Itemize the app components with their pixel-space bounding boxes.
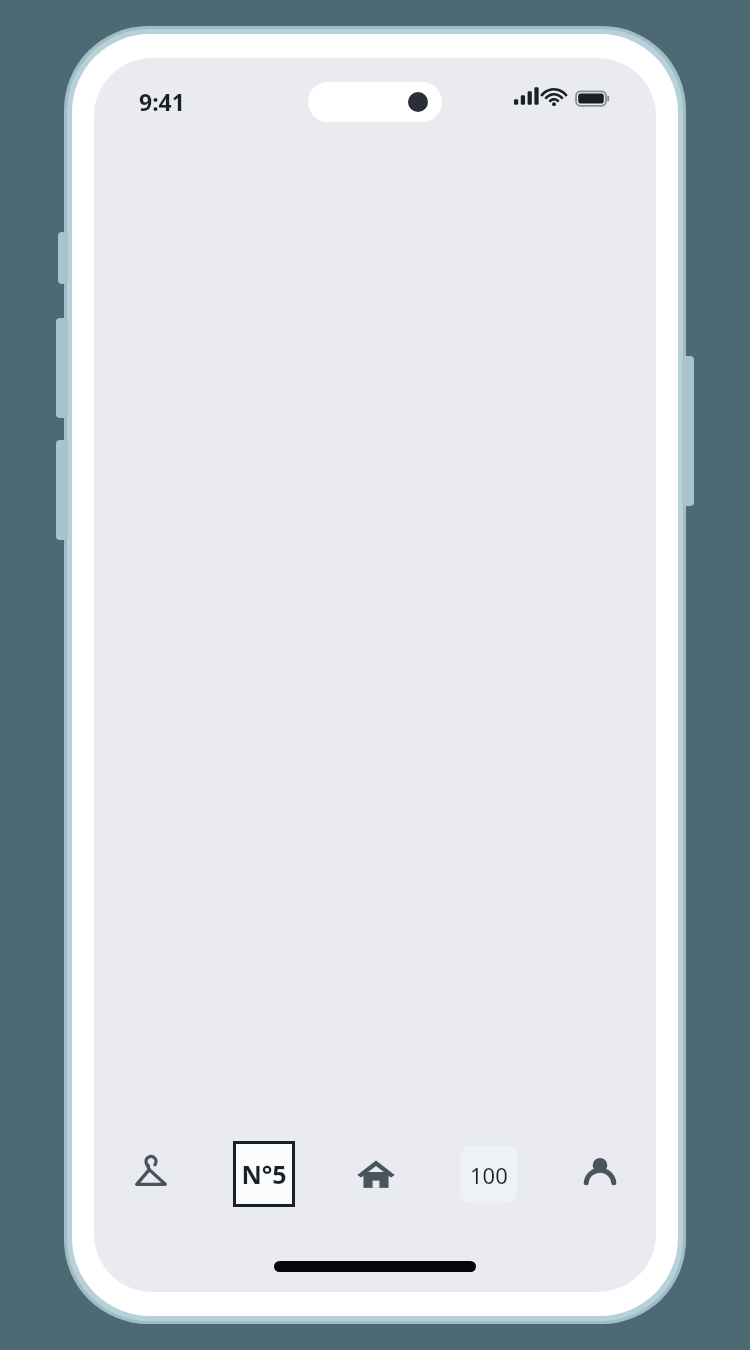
button[interactable]: Collection N5 [207, 1126, 320, 1222]
button[interactable]: Wardrobe [94, 1126, 207, 1222]
staticText: 100 [470, 1160, 508, 1190]
staticText: N°5 [241, 1157, 287, 1191]
button[interactable]: Home [320, 1126, 432, 1222]
staticText: 9:41 [139, 86, 185, 117]
button[interactable]: Score 100 [432, 1126, 544, 1222]
button[interactable]: Profile [544, 1126, 656, 1222]
